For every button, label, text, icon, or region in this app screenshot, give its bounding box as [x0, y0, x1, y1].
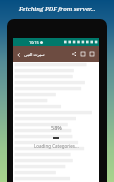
staticText: 58%: [51, 124, 62, 131]
staticText: Fetching PDF from server...: [19, 5, 96, 13]
button[interactable]: Settings: [88, 50, 96, 58]
button[interactable]: Share: [70, 50, 78, 58]
button[interactable]: Back: [14, 50, 23, 59]
staticText: 10:15: [29, 40, 39, 45]
staticText: Loading Categories...: [34, 143, 79, 149]
staticText: سیرت النبی: [24, 52, 45, 58]
button[interactable]: Bookmark: [79, 50, 87, 58]
